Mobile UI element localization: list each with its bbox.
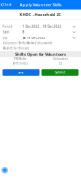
button[interactable]: Recording indicator — [0, 166, 9, 174]
button[interactable]: Batch — [0, 29, 81, 35]
staticText: My shift for this site — [2, 47, 29, 50]
button[interactable]: Save — [2, 69, 39, 76]
staticText: Submit — [55, 71, 65, 74]
button[interactable]: Check — [0, 0, 13, 9]
staticText: Apply Volunteer Skills — [19, 2, 61, 7]
staticText: Batch — [2, 30, 9, 34]
staticText: B — [22, 30, 24, 34]
staticText: KHDC - Household 2C — [19, 12, 61, 17]
button[interactable]: Submit — [41, 69, 78, 76]
staticText: Check — [3, 3, 12, 6]
staticText: Sat 18 Dec 2022 — [22, 36, 45, 39]
staticText: PM Shifts — [14, 57, 26, 61]
staticText: Save — [18, 71, 24, 74]
staticText: Shift notes — [12, 62, 27, 65]
button[interactable]: Period — [0, 24, 81, 29]
staticText: Volunteer — [53, 57, 68, 61]
staticText: Shifts Open for Volunteers — [15, 51, 66, 57]
button[interactable]: Trip — [0, 35, 81, 40]
button[interactable]: Select volunteer shift — [58, 61, 63, 66]
staticText: Period — [2, 25, 12, 28]
staticText: Volunteer Shifts Worked this month — [2, 41, 52, 45]
staticText: Trip — [2, 36, 7, 39]
staticText: 1 Dec 2022 - 18 Dec 2022 — [22, 25, 61, 28]
